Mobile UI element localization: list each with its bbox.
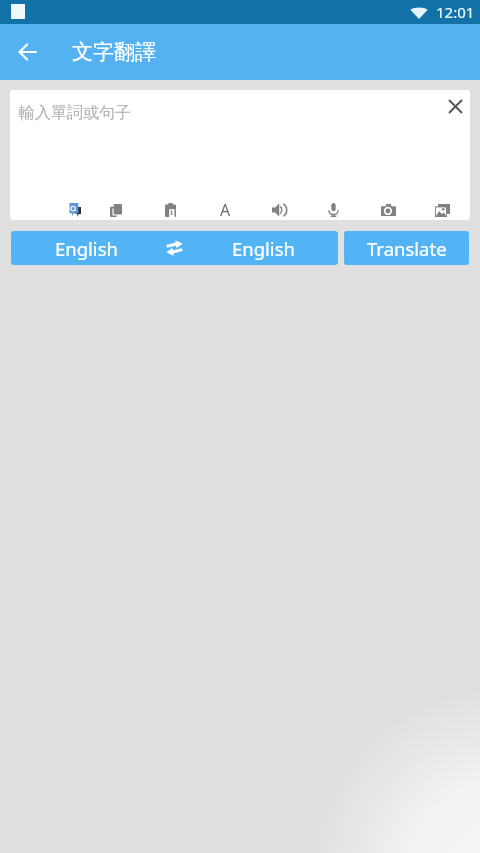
staticText: Translate [367,236,447,261]
button[interactable]: Listen [263,194,295,220]
staticText: 12:01 [436,2,475,22]
button[interactable]: Swap languages [161,231,188,265]
staticText: English [232,236,295,261]
button[interactable]: Translate from clipboard [59,194,91,220]
button[interactable]: Copy [100,194,132,220]
button[interactable]: Clear text [439,90,470,122]
staticText: 輸入單詞或句子 [19,103,131,123]
button[interactable]: Text size [209,194,241,220]
button[interactable]: Voice input [317,194,349,220]
staticText: A [220,199,231,220]
staticText: English [55,236,118,261]
button[interactable]: Back [5,30,49,74]
button[interactable]: English [188,231,338,265]
button[interactable]: Gallery [426,194,458,220]
staticText: 文字翻譯 [72,39,156,65]
button[interactable]: English [11,231,161,265]
button[interactable]: Paste [154,194,186,220]
button[interactable]: Camera [372,194,404,220]
button[interactable]: Translate [344,231,469,265]
